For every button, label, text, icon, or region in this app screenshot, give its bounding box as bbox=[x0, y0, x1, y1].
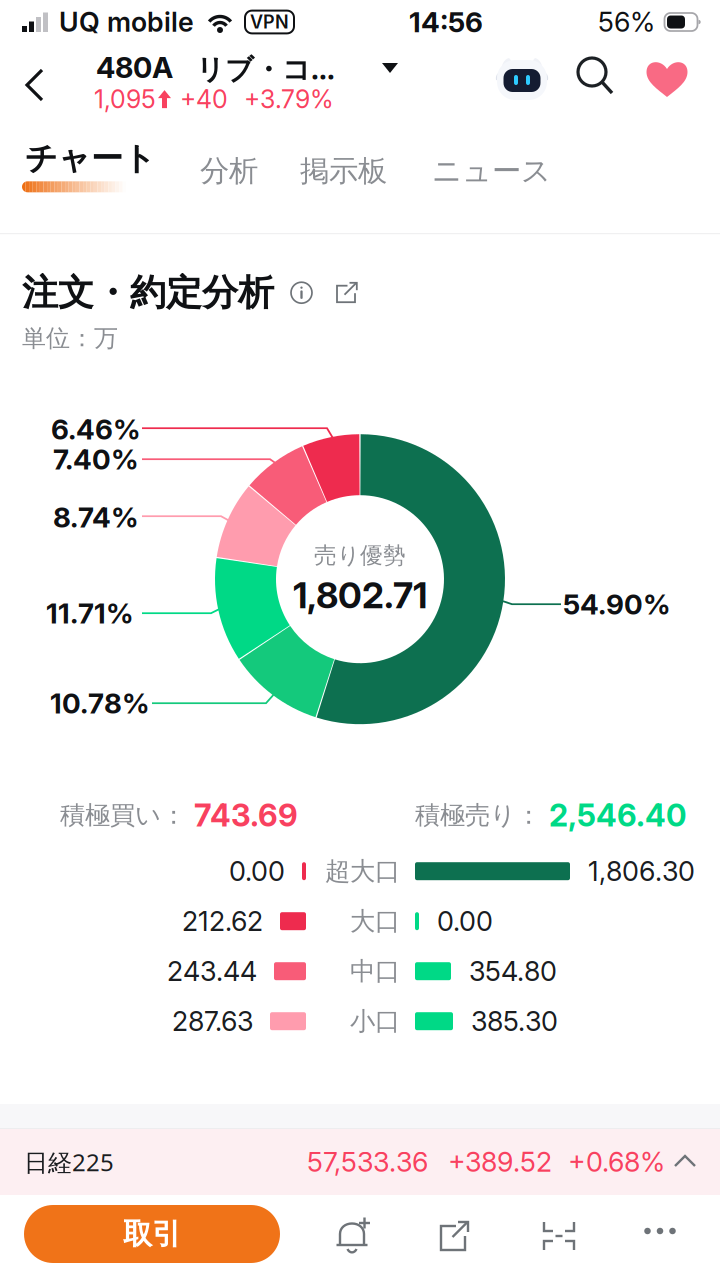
staticText: 超大口 bbox=[325, 856, 400, 887]
staticText: 注文・約定分析 bbox=[22, 271, 274, 315]
staticText: 分析 bbox=[200, 153, 258, 189]
button[interactable]: AI assistant bbox=[481, 44, 563, 112]
button[interactable]: Switch stock bbox=[368, 47, 412, 89]
button[interactable]: Expand bbox=[660, 1129, 710, 1194]
button[interactable]: ニュース bbox=[412, 137, 571, 205]
staticText: 54.90% bbox=[563, 587, 671, 621]
button[interactable]: 掲示板 bbox=[280, 137, 407, 205]
staticText: +3.79% bbox=[244, 84, 334, 114]
staticText: 中口 bbox=[350, 956, 400, 987]
staticText: 単位：万 bbox=[22, 323, 118, 353]
staticText: チャート bbox=[25, 139, 156, 178]
button[interactable]: More bbox=[628, 1195, 692, 1267]
staticText: 大口 bbox=[350, 906, 400, 937]
button[interactable]: 分析 bbox=[180, 137, 278, 205]
staticText: 7.40% bbox=[53, 442, 139, 476]
staticText: +0.68% bbox=[568, 1146, 665, 1178]
staticText: 743.69 bbox=[194, 796, 298, 834]
staticText: 日経225 bbox=[24, 1146, 114, 1178]
staticText: 287.63 bbox=[172, 1005, 253, 1038]
staticText: 243.44 bbox=[167, 955, 257, 988]
button[interactable]: Collapse bbox=[524, 1195, 594, 1277]
staticText: 1,802.71 bbox=[293, 573, 427, 617]
button[interactable]: Search bbox=[565, 46, 635, 116]
staticText: 8.74% bbox=[53, 500, 139, 534]
staticText: +389.52 bbox=[448, 1146, 552, 1178]
staticText: 積極売り： bbox=[415, 800, 541, 831]
staticText: 354.80 bbox=[469, 955, 557, 988]
staticText: 11.71% bbox=[46, 596, 134, 630]
button[interactable]: Share bbox=[324, 269, 369, 316]
button[interactable]: チャート bbox=[0, 125, 180, 202]
staticText: 2,546.40 bbox=[549, 796, 687, 834]
staticText: UQ mobile bbox=[59, 6, 194, 38]
staticText: 56% bbox=[598, 6, 655, 38]
staticText: 0.00 bbox=[437, 905, 493, 938]
staticText: VPN bbox=[250, 11, 289, 33]
staticText: 10.78% bbox=[50, 686, 150, 720]
button[interactable]: Back bbox=[0, 44, 69, 126]
staticText: 0.00 bbox=[229, 855, 285, 888]
staticText: 1,806.30 bbox=[588, 855, 695, 888]
staticText: 14:56 bbox=[409, 5, 483, 39]
staticText: +40 bbox=[180, 84, 228, 114]
staticText: 212.62 bbox=[182, 905, 263, 938]
staticText: 積極買い： bbox=[60, 800, 186, 831]
staticText: リブ・コ… bbox=[196, 50, 335, 87]
staticText: 売り優勢 bbox=[314, 541, 406, 569]
staticText: 6.46% bbox=[51, 412, 141, 446]
staticText: 掲示板 bbox=[300, 153, 387, 189]
button[interactable]: Favorite bbox=[635, 48, 700, 111]
button[interactable]: Alerts bbox=[317, 1195, 389, 1277]
staticText: 1,095 bbox=[94, 84, 156, 114]
staticText: 57,533.36 bbox=[307, 1146, 428, 1178]
button[interactable]: 取引 bbox=[24, 1205, 280, 1263]
button[interactable]: Info bbox=[274, 269, 324, 316]
staticText: 385.30 bbox=[471, 1005, 558, 1038]
staticText: 取引 bbox=[123, 1216, 181, 1252]
staticText: ニュース bbox=[432, 153, 551, 189]
button[interactable]: Share bbox=[420, 1195, 490, 1277]
staticText: 小口 bbox=[350, 1006, 400, 1037]
staticText: 480A bbox=[96, 50, 173, 85]
